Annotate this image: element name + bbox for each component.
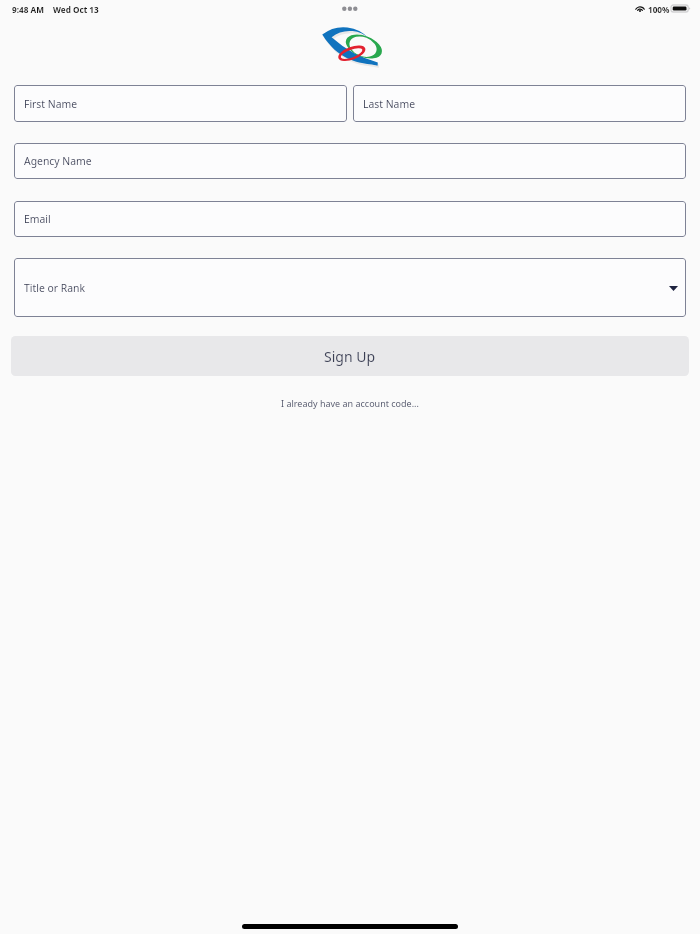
staticText: Agency Name [24, 154, 92, 168]
staticText: 100% [648, 4, 670, 15]
button[interactable]: Title or Rank [14, 258, 686, 317]
staticText: First Name [24, 97, 78, 111]
other: Open dropdown [669, 286, 678, 291]
staticText: Last Name [363, 97, 416, 111]
button[interactable]: Sign Up [11, 336, 689, 376]
staticText: Title or Rank [24, 281, 85, 295]
button[interactable]: Email [14, 201, 686, 237]
staticText: Wed Oct 13 [53, 4, 99, 15]
button[interactable]: Agency Name [14, 143, 686, 179]
button[interactable]: I already have an account code... [0, 394, 700, 412]
button[interactable]: First Name [14, 85, 347, 122]
staticText: Sign Up [324, 347, 376, 366]
staticText: I already have an account code... [281, 397, 419, 409]
button[interactable]: Last Name [353, 85, 686, 122]
staticText: Email [24, 212, 51, 226]
staticText: 9:48 AM [12, 4, 44, 15]
